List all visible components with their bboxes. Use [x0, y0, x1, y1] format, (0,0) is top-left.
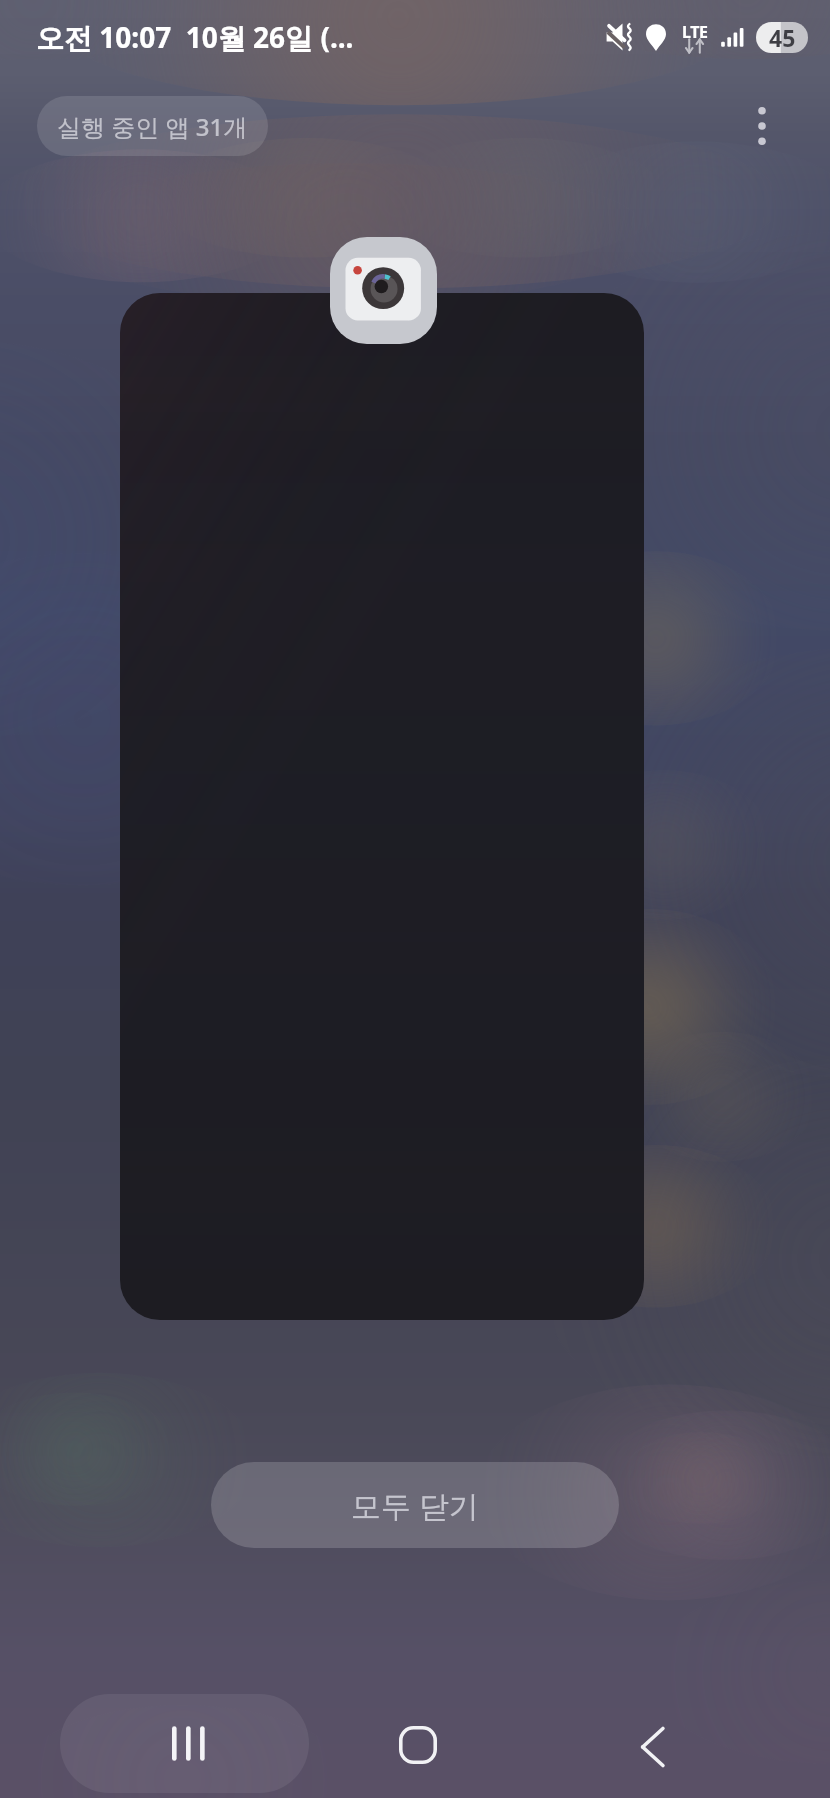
staticText: LTE: [682, 21, 708, 43]
button[interactable]: Recent apps: [60, 1694, 309, 1793]
button[interactable]: Back: [604, 1699, 700, 1795]
button[interactable]: Home: [370, 1697, 466, 1793]
button[interactable]: More options: [714, 78, 810, 174]
staticText: 실행 중인 앱 31개: [57, 110, 248, 143]
staticText: 오전 10:07 10월 26일 (...: [36, 18, 354, 56]
button[interactable]: 모두 닫기: [211, 1462, 619, 1548]
button[interactable]: 실행 중인 앱 31개: [37, 96, 268, 156]
staticText: 45: [769, 22, 796, 53]
staticText: 모두 닫기: [351, 1485, 479, 1526]
button[interactable]: [120, 293, 644, 1320]
